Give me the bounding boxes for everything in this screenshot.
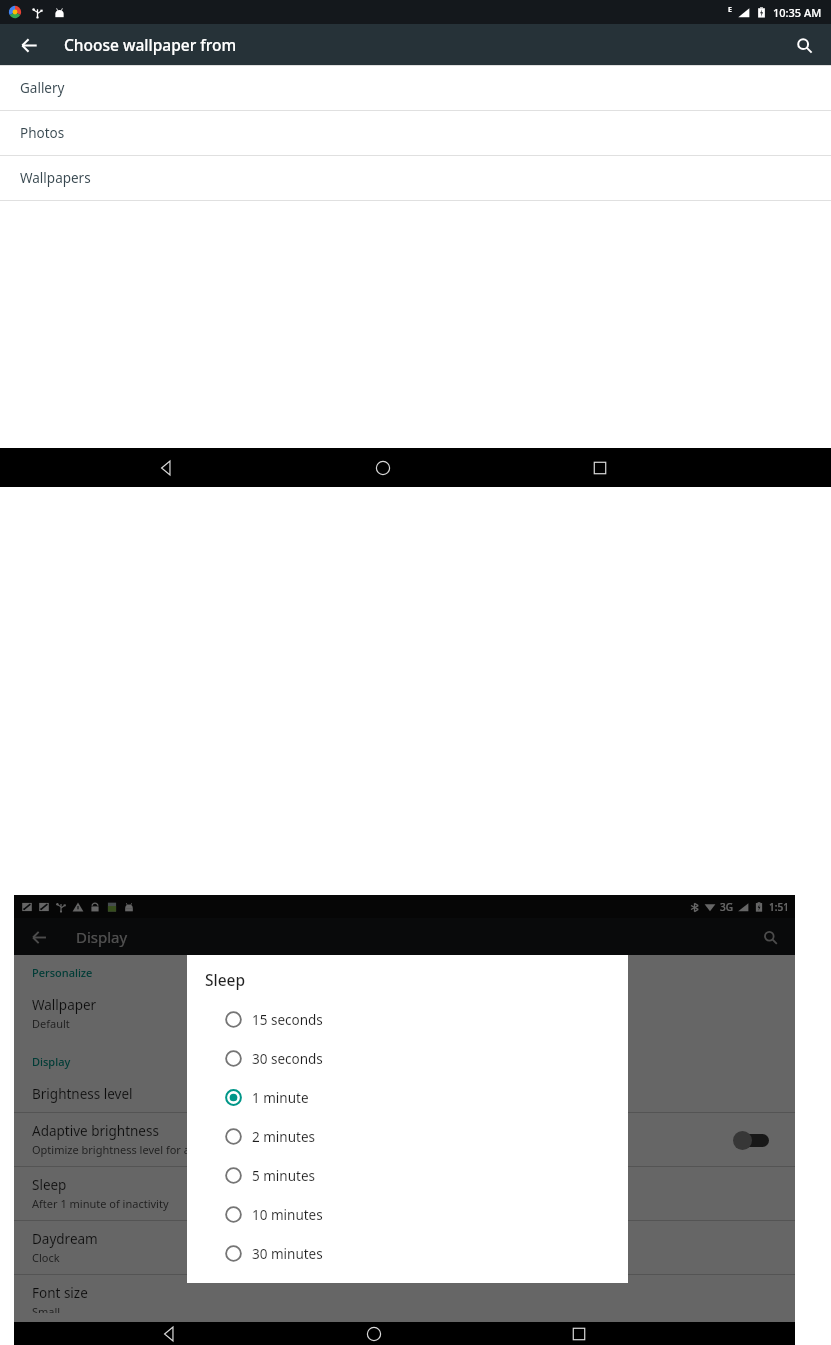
button[interactable]: 1 minute bbox=[225, 1078, 612, 1117]
staticText: 2 minutes bbox=[252, 1128, 315, 1146]
staticText: Gallery bbox=[20, 79, 65, 97]
button[interactable]: Back bbox=[144, 448, 188, 487]
staticText: Sleep bbox=[32, 1176, 67, 1194]
button[interactable]: Brightness level bbox=[14, 1076, 795, 1113]
staticText: 30 minutes bbox=[252, 1245, 323, 1263]
staticText: Clock bbox=[32, 1250, 60, 1265]
button[interactable]: Recent apps bbox=[557, 1322, 601, 1345]
staticText: 1:51 bbox=[769, 900, 789, 914]
staticText: Font size bbox=[32, 1284, 88, 1302]
button[interactable]: 2 minutes bbox=[225, 1117, 612, 1156]
button[interactable]: Back bbox=[24, 922, 54, 952]
staticText: Brightness level bbox=[32, 1085, 133, 1103]
button[interactable]: Wallpaper bbox=[14, 987, 795, 1040]
staticText: 10 minutes bbox=[252, 1206, 323, 1224]
staticText: Display bbox=[76, 927, 128, 947]
staticText: Choose wallpaper from bbox=[64, 34, 237, 55]
staticText: Photos bbox=[20, 124, 65, 142]
staticText: After 1 minute of inactivity bbox=[32, 1196, 169, 1211]
staticText: Adaptive brightness bbox=[32, 1122, 159, 1140]
staticText: 30 seconds bbox=[252, 1050, 323, 1068]
button[interactable]: Adaptive brightness bbox=[14, 1113, 795, 1167]
staticText: Personalize bbox=[32, 965, 93, 980]
button[interactable]: 30 minutes bbox=[225, 1234, 612, 1273]
button[interactable]: Photos bbox=[0, 111, 831, 156]
button[interactable]: Search bbox=[755, 922, 785, 952]
staticText: 1 minute bbox=[252, 1089, 309, 1107]
button[interactable]: 5 minutes bbox=[225, 1156, 612, 1195]
staticText: 15 seconds bbox=[252, 1011, 323, 1029]
staticText: 3G bbox=[720, 900, 733, 914]
staticText: E bbox=[728, 5, 732, 15]
staticText: Sleep bbox=[205, 969, 246, 990]
button[interactable]: 10 minutes bbox=[225, 1195, 612, 1234]
staticText: Optimize brightness level for a bbox=[32, 1142, 190, 1157]
staticText: Small bbox=[32, 1304, 61, 1313]
staticText: Default bbox=[32, 1016, 70, 1031]
button[interactable]: Font size bbox=[14, 1275, 795, 1322]
button[interactable]: Wallpapers bbox=[0, 156, 831, 201]
button[interactable]: Gallery bbox=[0, 66, 831, 111]
button[interactable]: Recent apps bbox=[578, 448, 622, 487]
staticText: 10:35 AM bbox=[773, 5, 822, 20]
button[interactable]: Back bbox=[12, 28, 46, 62]
button[interactable]: Daydream bbox=[14, 1221, 795, 1275]
button[interactable]: Home bbox=[361, 448, 405, 487]
button[interactable]: Search bbox=[787, 28, 821, 62]
button[interactable]: Home bbox=[352, 1322, 396, 1345]
staticText: Display bbox=[32, 1054, 71, 1069]
staticText: Daydream bbox=[32, 1230, 98, 1248]
button[interactable]: 15 seconds bbox=[225, 1000, 612, 1039]
button[interactable]: Sleep bbox=[14, 1167, 795, 1221]
button[interactable]: 30 seconds bbox=[225, 1039, 612, 1078]
staticText: Wallpapers bbox=[20, 169, 91, 187]
button[interactable]: Back bbox=[147, 1322, 191, 1345]
staticText: 5 minutes bbox=[252, 1167, 315, 1185]
staticText: Wallpaper bbox=[32, 996, 97, 1014]
